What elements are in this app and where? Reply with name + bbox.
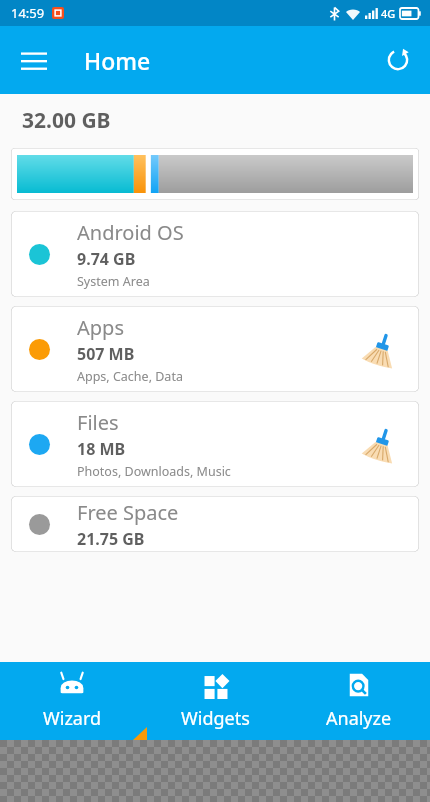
staticText: 9.74 GB	[77, 248, 136, 270]
staticText: 18 MB	[77, 438, 126, 460]
staticText: Apps, Cache, Data	[77, 368, 183, 385]
staticText: Home	[84, 45, 151, 76]
staticText: Wizard	[43, 706, 102, 731]
staticText: Widgets	[181, 706, 250, 731]
staticText: 507 MB	[77, 343, 135, 365]
button[interactable]: Analyze	[287, 662, 430, 740]
button[interactable]: Wizard	[0, 662, 144, 740]
button[interactable]: Widgets	[144, 662, 287, 740]
staticText: System Area	[77, 273, 150, 290]
button[interactable]: Storage usage breakdown	[11, 148, 419, 200]
staticText: Free Space	[77, 499, 179, 526]
button[interactable]: Android OS	[11, 211, 419, 297]
button[interactable]: Files	[11, 401, 419, 487]
staticText: Analyze	[326, 706, 392, 731]
button[interactable]: Clean Apps	[359, 327, 403, 371]
staticText: Photos, Downloads, Music	[77, 463, 231, 480]
button[interactable]: Apps	[11, 306, 419, 392]
staticText: 4G	[381, 6, 396, 21]
button[interactable]: Free Space	[11, 496, 419, 552]
staticText: Files	[77, 409, 119, 436]
staticText: Apps	[77, 314, 124, 341]
button[interactable]: Clean Files	[359, 422, 403, 466]
staticText: Android OS	[77, 219, 184, 246]
button[interactable]: Open navigation menu	[12, 38, 56, 82]
staticText: 14:59	[11, 4, 45, 22]
button[interactable]: Refresh	[376, 38, 420, 82]
staticText: 21.75 GB	[77, 528, 145, 550]
staticText: 32.00 GB	[22, 106, 111, 135]
